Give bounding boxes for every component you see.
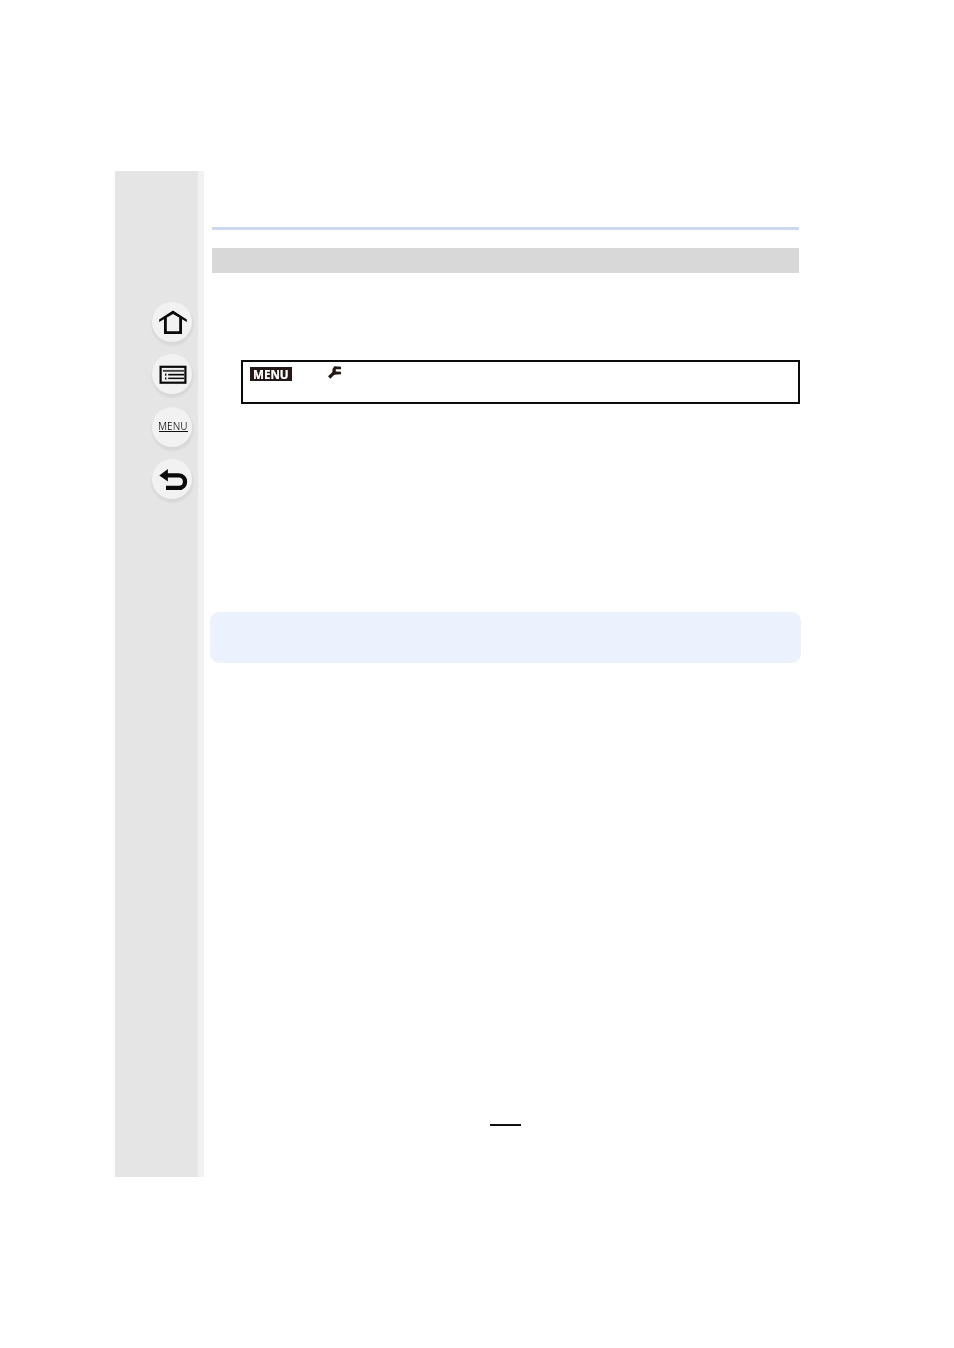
button[interactable]: MENU <box>241 360 800 404</box>
staticText: MENU <box>158 419 188 433</box>
button[interactable]: Back <box>152 459 192 499</box>
button[interactable]: Contents <box>152 354 192 394</box>
staticText: MENU <box>253 367 289 381</box>
button[interactable]: Menu <box>152 407 192 447</box>
button[interactable]: Home <box>152 302 192 342</box>
